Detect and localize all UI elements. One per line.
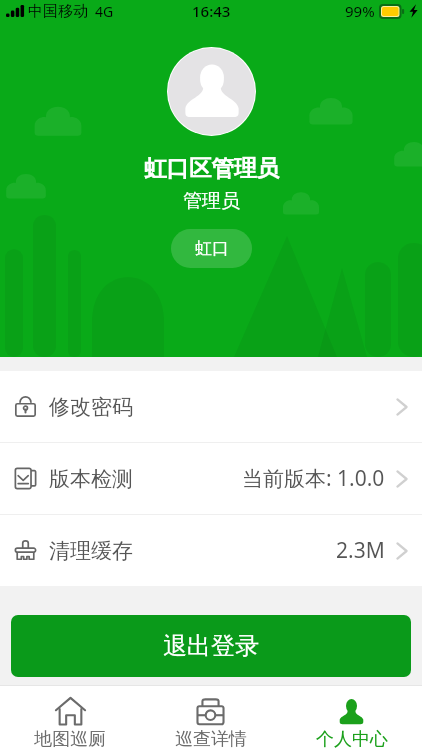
staticText: 虹口区管理员 — [144, 154, 279, 182]
button[interactable]: 地图巡厕 — [0, 686, 140, 750]
staticText: 管理员 — [183, 189, 240, 213]
staticText: 退出登录 — [163, 631, 259, 661]
staticText: 当前版本: 1.0.0 — [242, 464, 385, 493]
staticText: 巡查详情 — [175, 728, 247, 750]
button[interactable]: 虹口 — [171, 229, 252, 268]
staticText: 清理缓存 — [49, 538, 133, 564]
staticText: 修改密码 — [49, 394, 133, 420]
button[interactable]: 退出登录 — [11, 615, 411, 677]
staticText: 99% — [345, 1, 375, 21]
staticText: 4G — [95, 2, 114, 21]
staticText: 个人中心 — [316, 728, 388, 750]
staticText: 16:43 — [192, 1, 231, 21]
staticText: 2.3M — [336, 536, 385, 565]
button[interactable]: 清理缓存 — [0, 515, 422, 586]
button[interactable]: 个人中心 — [281, 686, 422, 750]
staticText: 地图巡厕 — [34, 728, 106, 750]
staticText: 版本检测 — [49, 466, 133, 492]
button[interactable]: 巡查详情 — [140, 686, 281, 750]
staticText: 中国移动 — [28, 2, 88, 21]
staticText: 虹口 — [195, 238, 229, 259]
button[interactable]: 修改密码 — [0, 371, 422, 442]
button[interactable]: 版本检测 — [0, 443, 422, 514]
